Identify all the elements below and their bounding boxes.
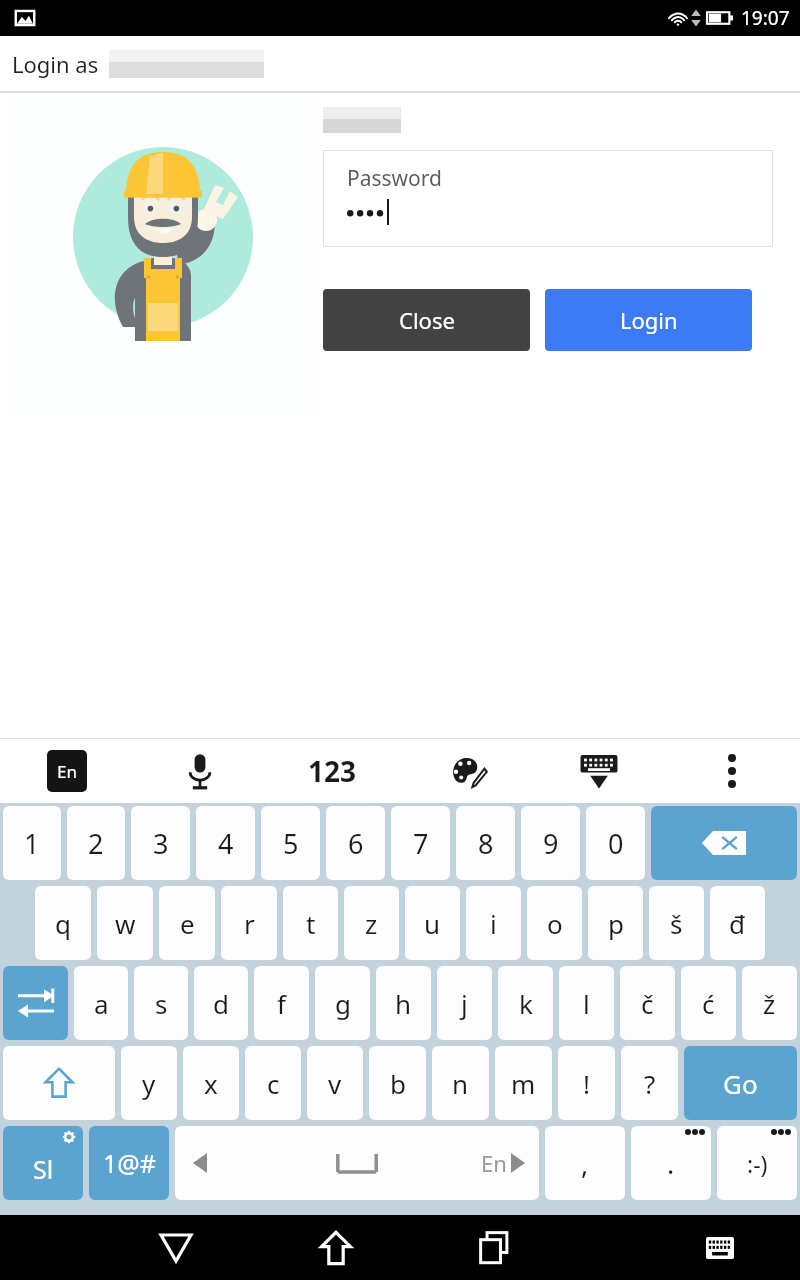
staticText: 1@#: [103, 1146, 156, 1180]
button[interactable]: a: [74, 966, 128, 1040]
button[interactable]: Backspace: [651, 806, 797, 880]
button[interactable]: n: [432, 1046, 489, 1120]
staticText: c: [267, 1066, 280, 1101]
staticText: :-): [747, 1148, 768, 1179]
button[interactable]: ?: [621, 1046, 678, 1120]
button[interactable]: b: [369, 1046, 426, 1120]
button[interactable]: 6: [326, 806, 385, 880]
button[interactable]: More options: [665, 738, 798, 803]
button[interactable]: j: [437, 966, 492, 1040]
staticText: g: [335, 986, 351, 1021]
button[interactable]: y: [121, 1046, 177, 1120]
button[interactable]: Keyboard: [666, 1215, 773, 1280]
staticText: a: [94, 986, 109, 1021]
staticText: h: [395, 986, 412, 1021]
button[interactable]: č: [620, 966, 675, 1040]
button[interactable]: q: [35, 886, 91, 960]
button[interactable]: !: [558, 1046, 615, 1120]
other: Backspace: [701, 828, 747, 858]
staticText: 2: [88, 825, 104, 862]
button[interactable]: 1: [3, 806, 61, 880]
button[interactable]: e: [159, 886, 215, 960]
button[interactable]: 9: [521, 806, 580, 880]
staticText: o: [547, 906, 563, 941]
staticText: 19:07: [741, 5, 790, 31]
staticText: k: [519, 986, 533, 1021]
button[interactable]: l: [559, 966, 614, 1040]
button[interactable]: i: [466, 886, 521, 960]
button[interactable]: 3: [131, 806, 190, 880]
staticText: j: [461, 986, 468, 1021]
staticText: .: [667, 1145, 675, 1182]
button[interactable]: s: [134, 966, 188, 1040]
staticText: f: [277, 986, 286, 1021]
button[interactable]: m: [495, 1046, 552, 1120]
staticText: ,: [581, 1145, 589, 1182]
button[interactable]: Close: [323, 289, 530, 351]
button[interactable]: Space: [175, 1126, 539, 1200]
button[interactable]: ,: [545, 1126, 625, 1200]
staticText: 123: [308, 752, 357, 790]
staticText: 9: [543, 825, 559, 862]
button[interactable]: 0: [586, 806, 645, 880]
button[interactable]: g: [315, 966, 370, 1040]
staticText: En: [481, 1148, 507, 1178]
button[interactable]: f: [254, 966, 309, 1040]
button[interactable]: 5: [261, 806, 320, 880]
button[interactable]: Recent apps: [442, 1215, 549, 1280]
button[interactable]: Hide keyboard: [532, 738, 665, 803]
staticText: v: [328, 1066, 342, 1101]
button[interactable]: 2: [67, 806, 125, 880]
button[interactable]: Language English: [0, 738, 133, 803]
button[interactable]: ž: [742, 966, 797, 1040]
staticText: i: [490, 906, 497, 941]
button[interactable]: 1@#: [89, 1126, 169, 1200]
button[interactable]: z: [344, 886, 399, 960]
button[interactable]: k: [498, 966, 553, 1040]
button[interactable]: Theme: [399, 738, 532, 803]
staticText: En: [57, 760, 77, 783]
staticText: e: [180, 906, 195, 941]
button[interactable]: đ: [710, 886, 765, 960]
button[interactable]: x: [183, 1046, 239, 1120]
button[interactable]: ć: [681, 966, 736, 1040]
button[interactable]: o: [527, 886, 582, 960]
staticText: Password: [347, 164, 442, 193]
button[interactable]: w: [97, 886, 153, 960]
staticText: 1: [24, 825, 40, 862]
staticText: Sl: [33, 1152, 54, 1186]
button[interactable]: :-): [717, 1126, 797, 1200]
button[interactable]: Go: [684, 1046, 797, 1120]
button[interactable]: Voice input: [133, 738, 266, 803]
button[interactable]: 7: [391, 806, 450, 880]
button[interactable]: 4: [196, 806, 255, 880]
button[interactable]: Back: [122, 1215, 229, 1280]
staticText: ž: [763, 986, 776, 1021]
button[interactable]: š: [649, 886, 704, 960]
staticText: b: [390, 1066, 406, 1101]
other: Language settings: [3, 1126, 83, 1200]
button[interactable]: Shift: [3, 1046, 115, 1120]
button[interactable]: 123: [266, 738, 399, 803]
staticText: 5: [283, 825, 299, 862]
button[interactable]: t: [283, 886, 338, 960]
button[interactable]: .: [631, 1126, 711, 1200]
button[interactable]: Password: [323, 150, 773, 247]
button[interactable]: Tab: [3, 966, 68, 1040]
staticText: y: [142, 1066, 156, 1101]
button[interactable]: Login: [545, 289, 752, 351]
button[interactable]: Home: [282, 1215, 389, 1280]
button[interactable]: u: [405, 886, 460, 960]
staticText: r: [244, 906, 255, 941]
button[interactable]: 8: [456, 806, 515, 880]
button[interactable]: p: [588, 886, 643, 960]
button[interactable]: v: [307, 1046, 363, 1120]
button[interactable]: r: [221, 886, 277, 960]
button[interactable]: Language settings: [3, 1126, 83, 1200]
staticText: š: [670, 906, 683, 941]
button[interactable]: h: [376, 966, 431, 1040]
staticText: 8: [478, 825, 494, 862]
staticText: Close: [399, 305, 455, 335]
button[interactable]: c: [245, 1046, 301, 1120]
button[interactable]: d: [194, 966, 248, 1040]
